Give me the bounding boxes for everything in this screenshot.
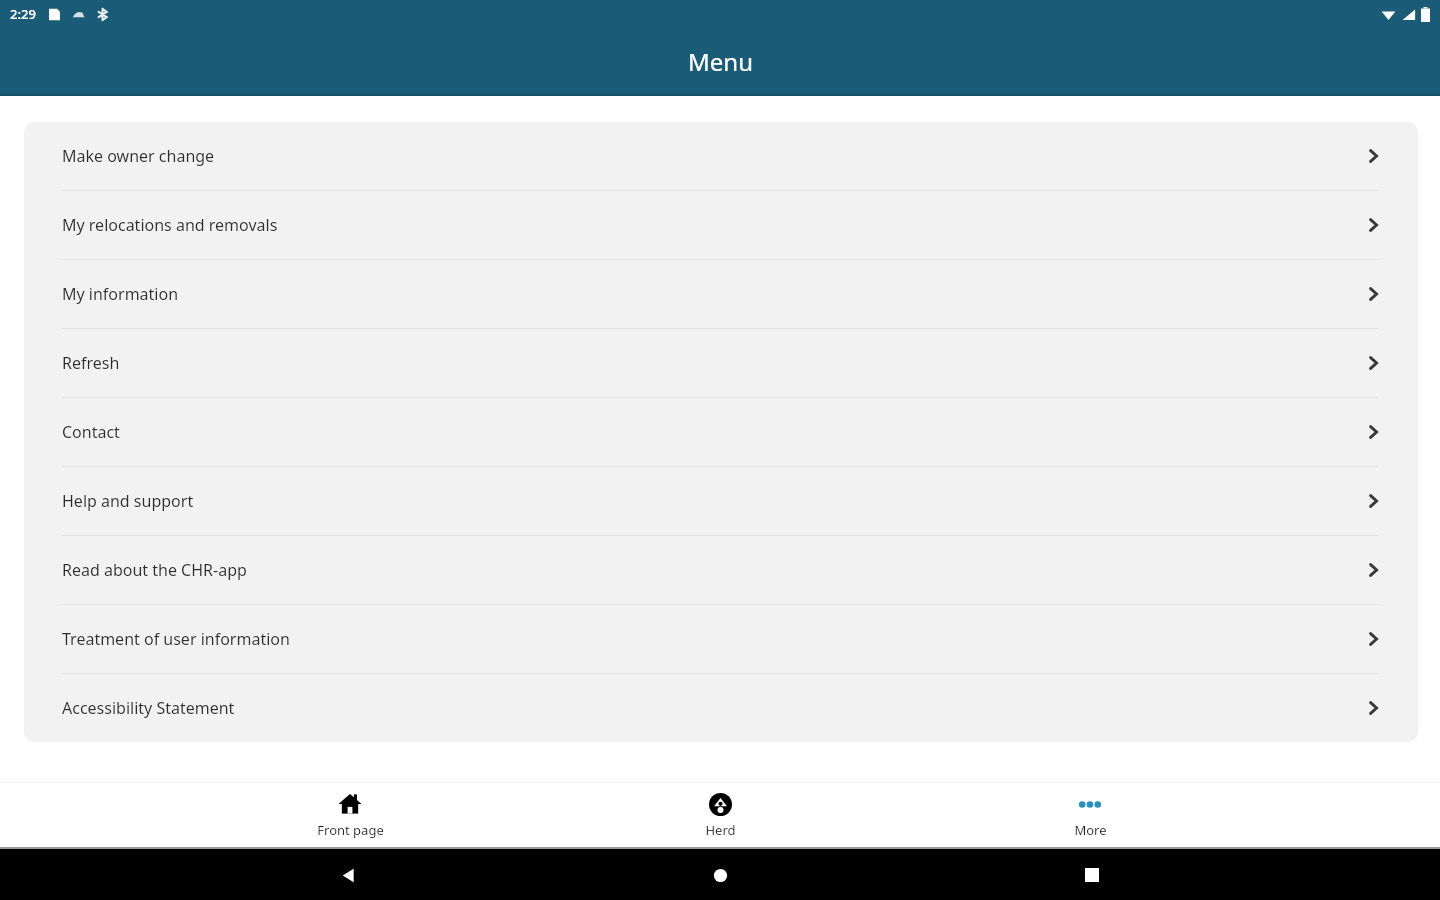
staticText: Help and support bbox=[62, 490, 1369, 512]
staticText: Read about the CHR-app bbox=[62, 559, 1369, 581]
staticText: Accessibility Statement bbox=[62, 697, 1369, 719]
button[interactable]: My relocations and removals bbox=[24, 191, 1418, 259]
button[interactable]: Back bbox=[324, 851, 372, 899]
button[interactable]: Contact bbox=[24, 398, 1418, 466]
button[interactable]: Herd bbox=[660, 783, 780, 847]
button[interactable]: More bbox=[1030, 783, 1150, 847]
staticText: Make owner change bbox=[62, 145, 1369, 167]
staticText: Refresh bbox=[62, 352, 1369, 374]
staticText: More bbox=[1074, 821, 1107, 839]
staticText: My information bbox=[62, 283, 1369, 305]
staticText: Contact bbox=[62, 421, 1369, 443]
staticText: Front page bbox=[317, 821, 384, 839]
button[interactable]: Front page bbox=[290, 783, 410, 847]
button[interactable]: Refresh bbox=[24, 329, 1418, 397]
button[interactable]: Home bbox=[696, 851, 744, 899]
staticText: Menu bbox=[688, 45, 753, 78]
button[interactable]: Recent apps bbox=[1068, 851, 1116, 899]
button[interactable]: Treatment of user information bbox=[24, 605, 1418, 673]
staticText: Herd bbox=[705, 821, 736, 839]
staticText: 2:29 bbox=[10, 5, 36, 23]
button[interactable]: Accessibility Statement bbox=[24, 674, 1418, 742]
button[interactable]: Read about the CHR-app bbox=[24, 536, 1418, 604]
staticText: My relocations and removals bbox=[62, 214, 1369, 236]
button[interactable]: Make owner change bbox=[24, 122, 1418, 190]
button[interactable]: My information bbox=[24, 260, 1418, 328]
staticText: Treatment of user information bbox=[62, 628, 1369, 650]
button[interactable]: Help and support bbox=[24, 467, 1418, 535]
